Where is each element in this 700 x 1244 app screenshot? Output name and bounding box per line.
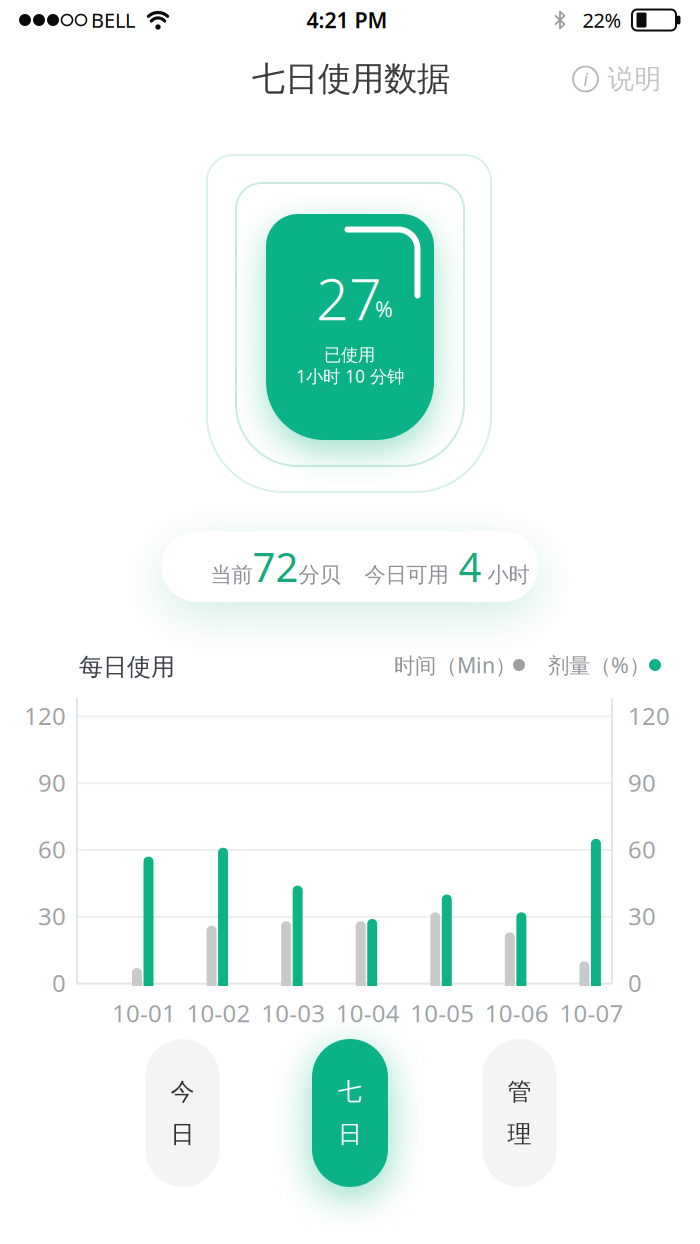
staticText: 10-07 xyxy=(559,997,623,1029)
staticText: 27 xyxy=(316,260,382,336)
staticText: 60 xyxy=(628,833,656,865)
staticText: 10-06 xyxy=(485,997,549,1029)
button[interactable]: i xyxy=(571,54,666,104)
staticText: 10-02 xyxy=(187,997,251,1029)
staticText: 10-01 xyxy=(112,997,176,1029)
staticText: 剂量（%） xyxy=(548,651,650,679)
staticText: 分贝 xyxy=(298,562,340,588)
staticText: 日 xyxy=(338,1119,362,1149)
staticText: 120 xyxy=(24,700,66,732)
staticText: 0 xyxy=(628,967,642,999)
staticText: 0 xyxy=(52,967,66,999)
staticText: 120 xyxy=(628,700,670,732)
staticText: 已使用 xyxy=(324,344,375,366)
staticText: 72 xyxy=(252,540,298,593)
button[interactable]: 今 xyxy=(144,1039,220,1187)
staticText: 日 xyxy=(170,1119,194,1149)
staticText: 每日使用 xyxy=(79,652,175,682)
staticText: BELL xyxy=(91,7,135,33)
staticText: 4 xyxy=(448,540,481,593)
button[interactable]: 七 xyxy=(312,1039,388,1187)
staticText: 说明 xyxy=(607,63,661,95)
staticText: 30 xyxy=(628,900,656,932)
staticText: 22% xyxy=(582,7,621,33)
staticText: 七 xyxy=(338,1077,362,1106)
staticText: % xyxy=(375,295,393,323)
staticText: 当前 xyxy=(210,562,252,588)
staticText: 90 xyxy=(628,766,656,798)
staticText: 今日可用 xyxy=(340,562,448,588)
staticText: 管 xyxy=(507,1077,531,1106)
staticText: 时间（Min） xyxy=(394,651,516,679)
staticText: 10-04 xyxy=(336,997,400,1029)
button[interactable]: 管 xyxy=(481,1039,557,1187)
staticText: 理 xyxy=(507,1119,531,1149)
staticText: 小时 xyxy=(481,562,529,588)
staticText: 90 xyxy=(38,766,66,798)
staticText: i xyxy=(583,67,587,90)
staticText: 30 xyxy=(38,900,66,932)
staticText: 1小时 10 分钟 xyxy=(296,364,404,387)
staticText: 10-05 xyxy=(410,997,474,1029)
staticText: 10-03 xyxy=(261,997,325,1029)
staticText: 4:21 PM xyxy=(306,6,387,34)
staticText: 60 xyxy=(38,833,66,865)
staticText: 七日使用数据 xyxy=(252,58,450,99)
staticText: 今 xyxy=(170,1077,194,1106)
